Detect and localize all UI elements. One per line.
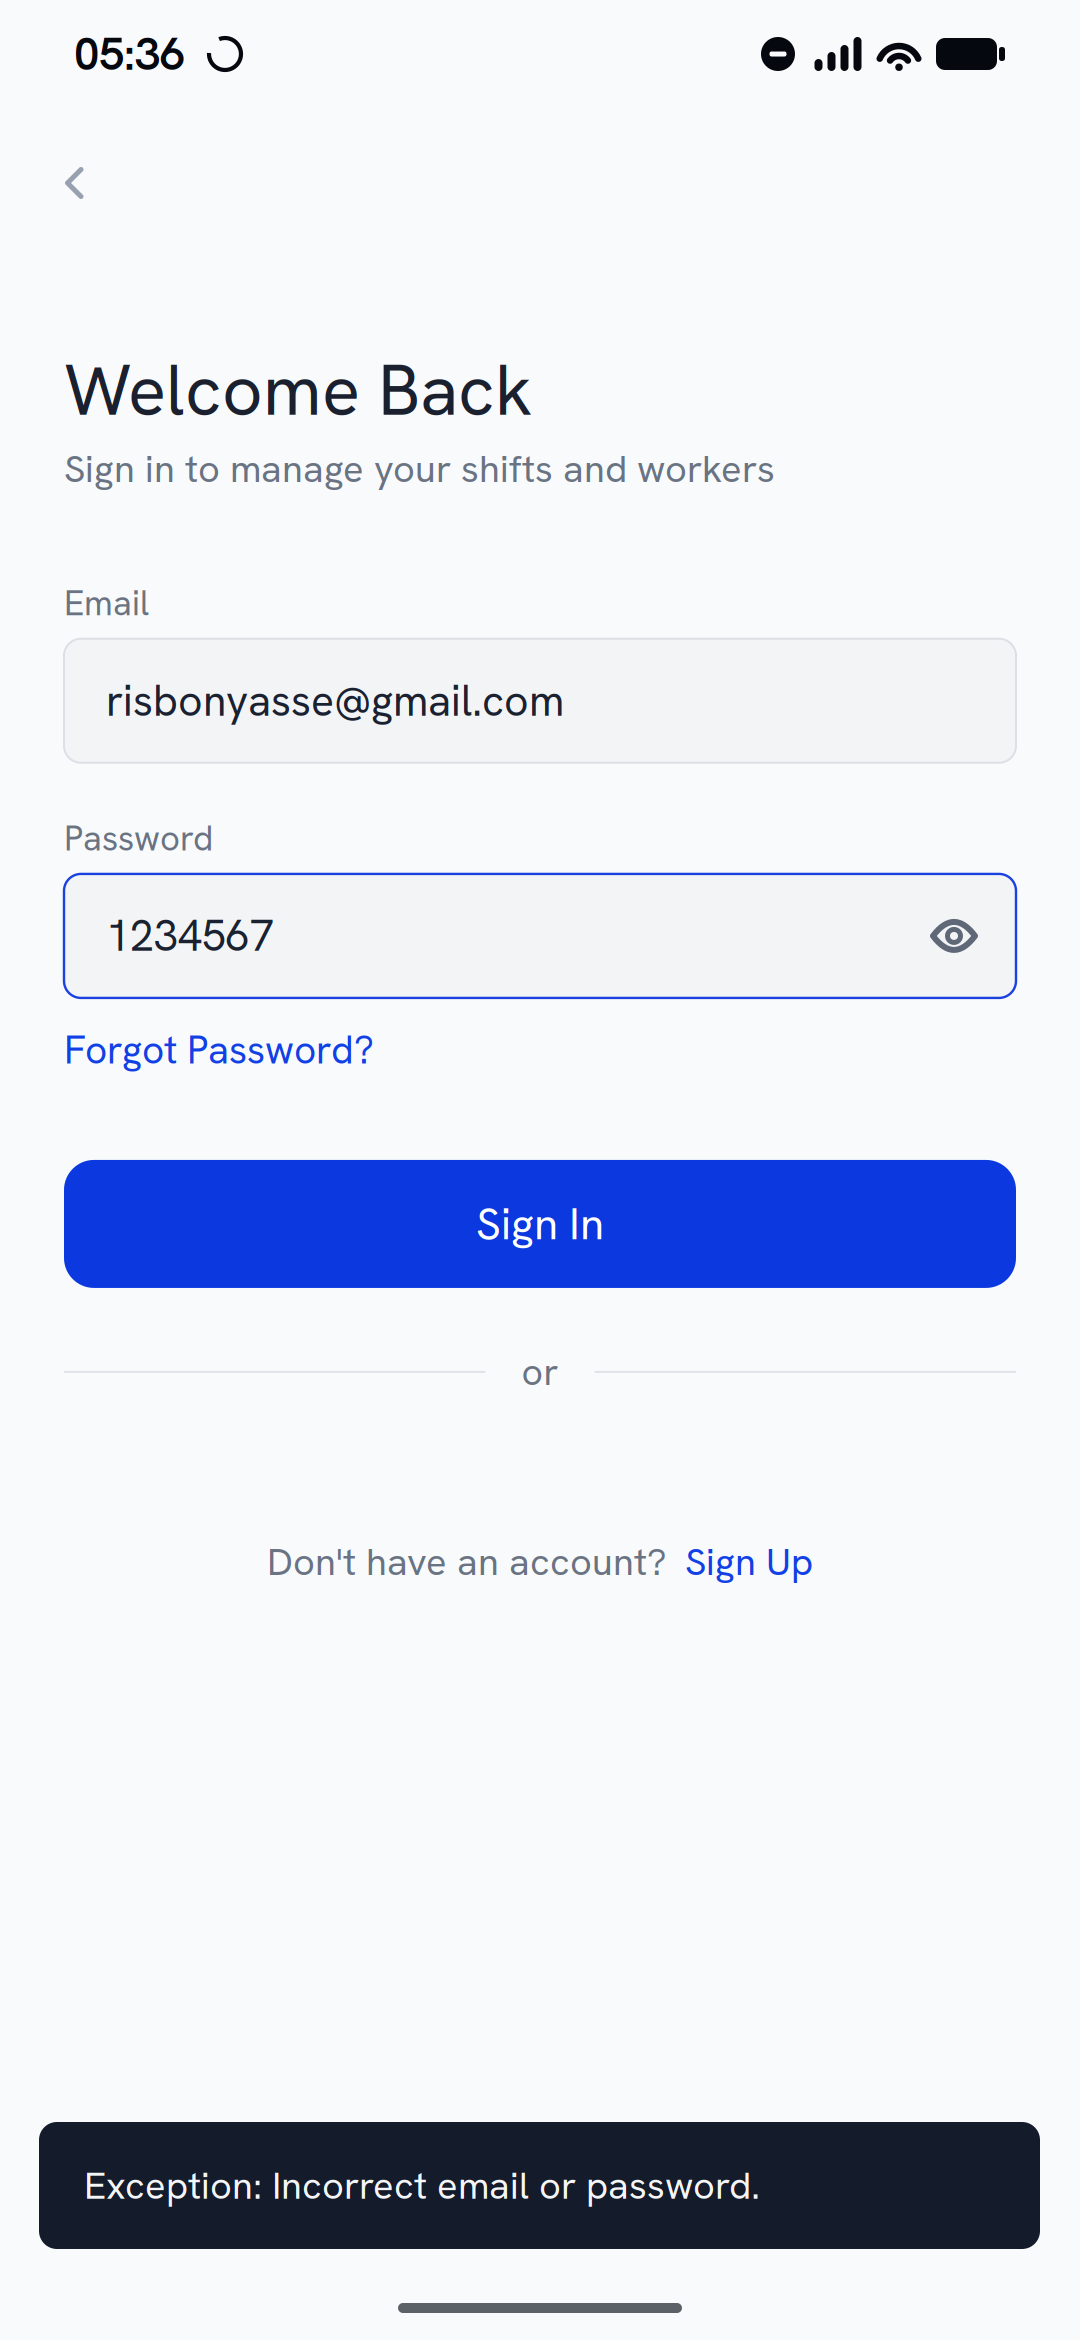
staticText: Exception: Incorrect email or password.: [84, 2161, 760, 2210]
button[interactable]: Sign In: [64, 1160, 1016, 1288]
staticText: 05:36: [74, 24, 185, 84]
staticText: or: [521, 1348, 558, 1396]
staticText: Forgot Password?: [64, 1025, 374, 1075]
staticText: risbonyasse@gmail.com: [106, 673, 564, 729]
staticText: Sign In: [476, 1195, 604, 1253]
button[interactable]: Show password: [930, 918, 978, 954]
staticText: Sign Up: [685, 1537, 813, 1586]
button[interactable]: Sign Up: [685, 1537, 813, 1586]
button[interactable]: Back: [0, 153, 132, 213]
staticText: Welcome Back: [64, 344, 533, 436]
staticText: Don't have an account?: [267, 1537, 667, 1586]
staticText: Sign in to manage your shifts and worker…: [64, 444, 775, 494]
button[interactable]: Forgot Password?: [64, 1026, 374, 1074]
staticText: Password: [64, 816, 213, 861]
staticText: 1234567: [106, 908, 274, 964]
staticText: Email: [64, 581, 149, 626]
